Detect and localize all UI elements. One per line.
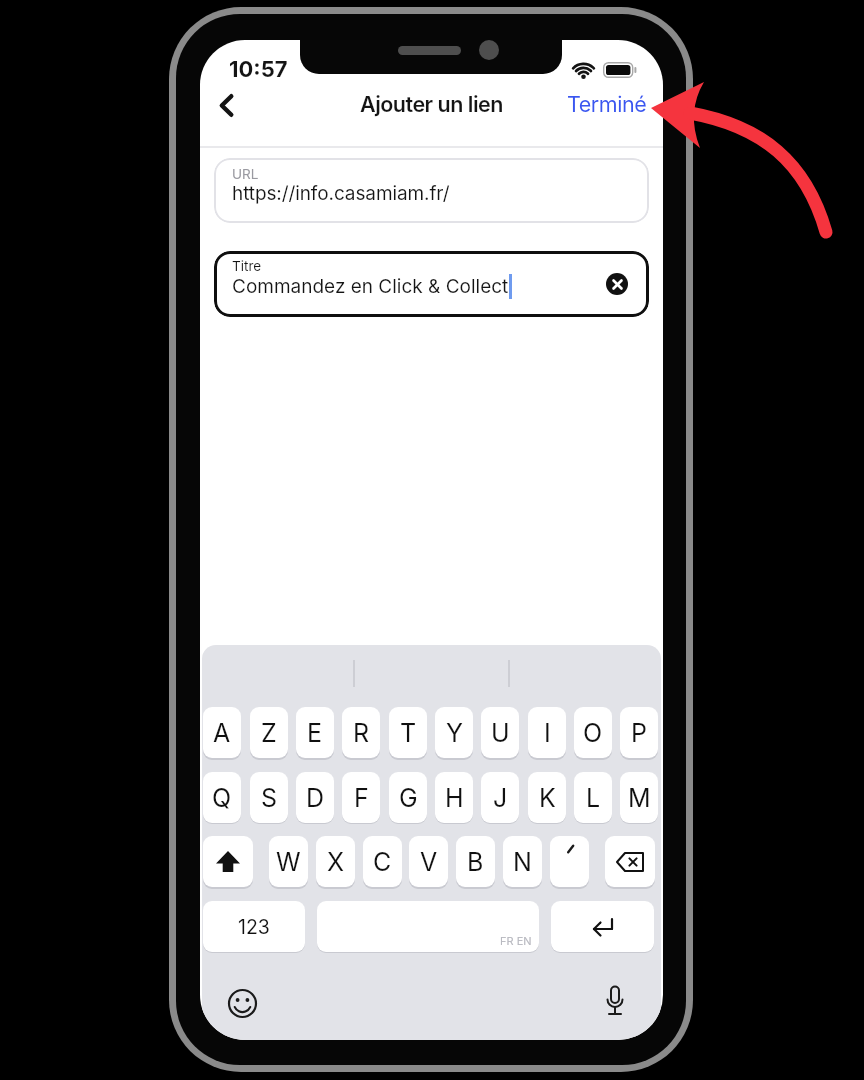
staticText: 10:57 (229, 56, 288, 83)
button[interactable]: URL (214, 158, 649, 223)
button[interactable] (203, 836, 253, 887)
button[interactable] (551, 901, 654, 952)
staticText: Y (446, 718, 463, 748)
staticText: Terminé (567, 91, 647, 117)
button[interactable] (602, 985, 628, 1022)
button[interactable]: B (456, 836, 495, 887)
staticText: N (513, 847, 532, 877)
button[interactable]: M (620, 772, 658, 823)
staticText: X (327, 847, 345, 877)
staticText: Q (212, 783, 232, 813)
staticText: G (399, 783, 418, 813)
staticText: https://info.casamiam.fr/ (232, 182, 450, 205)
button[interactable]: FR EN (317, 901, 539, 952)
button[interactable]: L (574, 772, 612, 823)
staticText: L (586, 783, 601, 813)
staticText: R (353, 718, 370, 748)
button[interactable]: Z (250, 707, 288, 758)
button[interactable]: J (481, 772, 519, 823)
button[interactable]: H (435, 772, 473, 823)
staticText: V (420, 847, 438, 877)
staticText: K (539, 783, 556, 813)
button[interactable]: 123 (203, 901, 305, 952)
staticText: E (307, 718, 323, 748)
button[interactable]: Titre (214, 251, 649, 317)
button[interactable]: D (296, 772, 334, 823)
button[interactable]: K (528, 772, 566, 823)
staticText: Ajouter un lien (360, 91, 503, 117)
button[interactable] (550, 836, 589, 887)
button[interactable]: T (389, 707, 427, 758)
button[interactable]: U (481, 707, 519, 758)
staticText: S (261, 783, 278, 813)
button[interactable]: I (528, 707, 566, 758)
staticText: U (491, 718, 510, 748)
staticText: Z (261, 718, 277, 748)
staticText: T (400, 718, 417, 748)
staticText: Commandez en Click & Collect (232, 275, 509, 298)
button[interactable]: R (342, 707, 380, 758)
button[interactable]: V (409, 836, 448, 887)
staticText: FR EN (500, 934, 532, 947)
staticText: J (493, 783, 508, 813)
staticText: I (544, 718, 551, 748)
staticText: B (467, 847, 484, 877)
button[interactable]: C (363, 836, 402, 887)
button[interactable]: F (342, 772, 380, 823)
staticText: 123 (238, 915, 270, 939)
staticText: O (583, 718, 603, 748)
button[interactable]: O (574, 707, 612, 758)
button[interactable]: X (316, 836, 355, 887)
button[interactable] (605, 836, 655, 887)
staticText: D (306, 783, 325, 813)
button[interactable] (606, 273, 628, 295)
button[interactable]: S (250, 772, 288, 823)
button[interactable]: G (389, 772, 427, 823)
staticText: C (373, 847, 392, 877)
button[interactable]: Y (435, 707, 473, 758)
button[interactable]: A (203, 707, 241, 758)
staticText: P (631, 718, 647, 748)
button[interactable]: Terminé (500, 91, 647, 121)
button[interactable] (219, 94, 234, 117)
button[interactable]: Q (203, 772, 241, 823)
staticText: M (628, 783, 651, 813)
button[interactable]: W (269, 836, 308, 887)
staticText: F (354, 783, 369, 813)
button[interactable] (227, 988, 258, 1019)
staticText: Titre (232, 258, 262, 274)
button[interactable]: P (620, 707, 658, 758)
button[interactable]: E (296, 707, 334, 758)
staticText: URL (232, 166, 259, 182)
staticText: A (213, 718, 231, 748)
staticText: H (445, 783, 464, 813)
button[interactable]: N (503, 836, 542, 887)
staticText: W (276, 847, 301, 877)
